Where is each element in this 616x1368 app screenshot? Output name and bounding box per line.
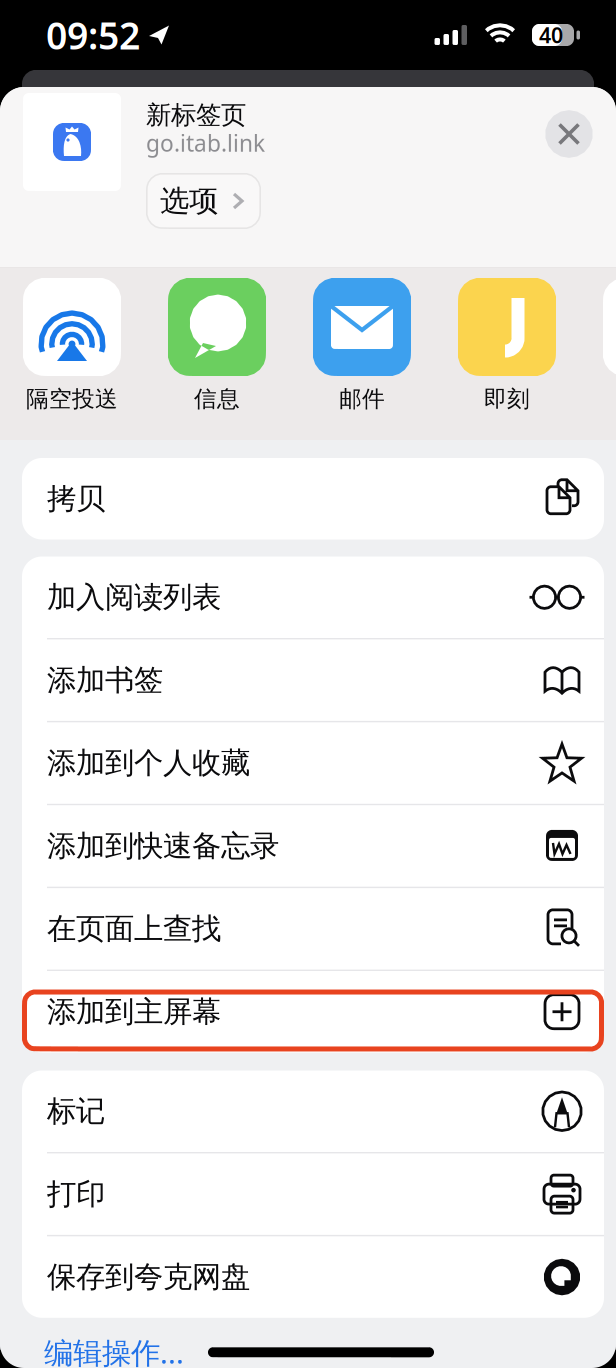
button[interactable]: 编辑操作... — [44, 1332, 184, 1368]
button[interactable]: 即刻 — [458, 278, 603, 411]
staticText: 40 — [539, 21, 563, 49]
staticText: 新标签页 — [146, 99, 246, 130]
button[interactable]: Close — [545, 110, 593, 158]
button[interactable]: 邮件 — [313, 278, 458, 411]
button[interactable]: 保存到夸克网盘 — [22, 1236, 604, 1318]
staticText: 添加到个人收藏 — [47, 745, 250, 781]
staticText: 信息 — [194, 385, 240, 413]
staticText: 编辑操作... — [44, 1333, 184, 1368]
staticText: 隔空投送 — [26, 385, 118, 413]
staticText: 09:52 — [46, 10, 140, 60]
button[interactable]: 标记 — [22, 1070, 604, 1152]
button[interactable]: 选项 — [146, 173, 261, 229]
staticText: 标记 — [47, 1093, 105, 1129]
button[interactable]: 加入阅读列表 — [22, 556, 604, 638]
button[interactable] — [603, 278, 616, 411]
staticText: go.itab.link — [146, 128, 265, 158]
staticText: 保存到夸克网盘 — [47, 1259, 250, 1295]
staticText: 在页面上查找 — [47, 911, 221, 947]
staticText: 选项 — [160, 183, 218, 219]
button[interactable]: 添加到快速备忘录 — [22, 805, 604, 887]
staticText: 加入阅读列表 — [47, 579, 221, 615]
button[interactable]: 在页面上查找 — [22, 888, 604, 970]
button[interactable]: 添加书签 — [22, 639, 604, 721]
staticText: 即刻 — [484, 385, 530, 413]
button[interactable]: 拷贝 — [22, 458, 604, 539]
button[interactable]: 隔空投送 — [23, 278, 168, 411]
button[interactable]: 信息 — [168, 278, 313, 411]
staticText: 添加到快速备忘录 — [47, 828, 279, 864]
staticText: 添加书签 — [47, 662, 163, 698]
staticText: 添加到主屏幕 — [47, 994, 221, 1030]
staticText: 打印 — [47, 1176, 105, 1212]
button[interactable]: 添加到主屏幕 — [22, 971, 604, 1052]
staticText: 邮件 — [339, 385, 385, 413]
button[interactable]: 添加到个人收藏 — [22, 722, 604, 804]
button[interactable]: 打印 — [22, 1153, 604, 1235]
staticText: 拷贝 — [47, 481, 105, 517]
